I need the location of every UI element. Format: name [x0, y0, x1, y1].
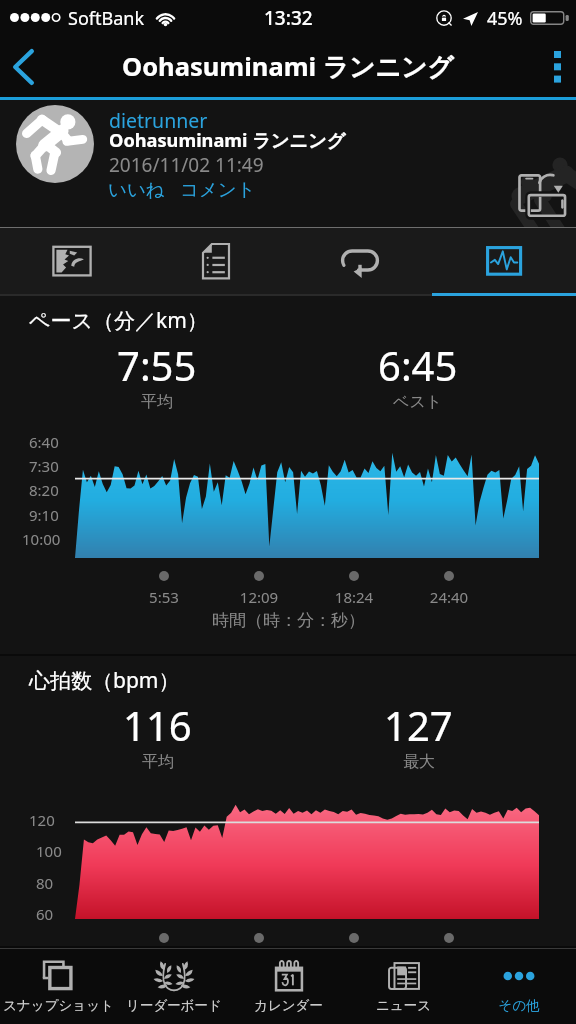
- button[interactable]: Laps: [288, 228, 432, 296]
- staticText: 116: [123, 698, 192, 752]
- staticText: SoftBank: [68, 6, 144, 31]
- staticText: 9:10: [29, 505, 59, 525]
- staticText: ベスト: [393, 392, 443, 412]
- staticText: 6:45: [378, 338, 458, 392]
- staticText: 6:40: [29, 432, 59, 452]
- staticText: 120: [29, 810, 55, 830]
- staticText: 12:09: [235, 587, 283, 607]
- staticText: Oohasuminami ランニング: [122, 49, 454, 84]
- staticText: 24:40: [425, 587, 473, 607]
- staticText: Oohasuminami ランニング: [109, 128, 346, 153]
- staticText: コメント: [180, 178, 256, 201]
- staticText: 2016/11/02 11:49: [109, 152, 264, 178]
- button[interactable]: Graphs: [432, 228, 576, 296]
- button[interactable]: カレンダー: [231, 948, 346, 1024]
- staticText: 時間（時：分：秒）: [212, 610, 365, 631]
- staticText: dietrunner: [109, 107, 208, 134]
- staticText: いいね: [108, 178, 165, 201]
- staticText: 13:32: [264, 5, 313, 31]
- staticText: ペース（分／km）: [29, 306, 208, 335]
- button[interactable]: ニュース: [346, 948, 461, 1024]
- button[interactable]: いいね: [108, 178, 165, 201]
- staticText: 80: [36, 873, 54, 893]
- button[interactable]: コメント: [180, 178, 256, 201]
- staticText: カレンダー: [254, 997, 323, 1014]
- staticText: ニュース: [376, 997, 431, 1014]
- staticText: 45%: [487, 6, 523, 31]
- staticText: 5:53: [140, 587, 188, 607]
- button[interactable]: Splits: [144, 228, 288, 296]
- button[interactable]: Map: [0, 228, 144, 296]
- staticText: 60: [36, 904, 54, 924]
- staticText: 100: [36, 841, 62, 861]
- staticText: 8:20: [29, 480, 59, 500]
- staticText: 7:30: [29, 456, 59, 476]
- staticText: 127: [384, 698, 453, 752]
- button[interactable]: リーダーボード: [116, 948, 231, 1024]
- staticText: その他: [498, 997, 540, 1014]
- button[interactable]: Back: [0, 36, 46, 97]
- staticText: 18:24: [330, 587, 378, 607]
- staticText: 10:00: [22, 529, 61, 549]
- staticText: 7:55: [117, 338, 197, 392]
- staticText: リーダーボード: [126, 997, 222, 1014]
- staticText: スナップショット: [3, 997, 114, 1014]
- staticText: 心拍数（bpm）: [29, 666, 180, 695]
- button[interactable]: More options: [528, 36, 576, 97]
- staticText: 平均: [142, 752, 174, 772]
- staticText: 最大: [403, 752, 435, 772]
- button[interactable]: スナップショット: [0, 948, 116, 1024]
- staticText: 平均: [141, 392, 173, 412]
- button[interactable]: Rotate device: [516, 172, 568, 220]
- button[interactable]: その他: [461, 948, 576, 1024]
